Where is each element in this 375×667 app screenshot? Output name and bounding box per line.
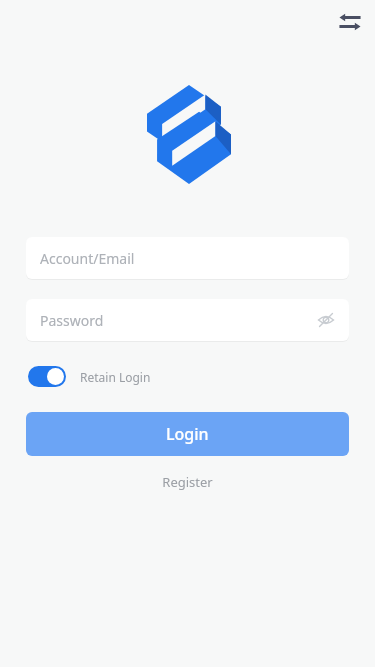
staticText: Password [40,311,315,330]
button[interactable]: Register [152,468,223,496]
button[interactable]: Account/Email [26,237,349,279]
staticText: Account/Email [40,249,337,268]
staticText: Retain Login [80,369,151,385]
button[interactable]: Switch server [334,6,366,38]
button[interactable]: Password [26,299,349,341]
staticText: Login [166,423,209,445]
button[interactable]: Login [26,412,349,456]
button[interactable]: Show password [315,309,337,331]
staticText: Register [162,473,213,491]
button[interactable]: Retain Login [26,364,151,389]
